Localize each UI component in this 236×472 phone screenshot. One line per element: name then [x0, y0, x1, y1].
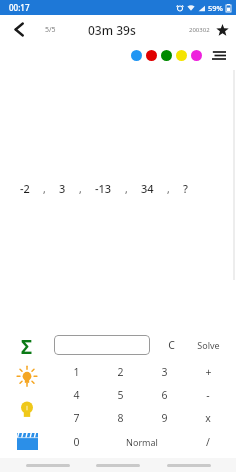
- button[interactable]: 0: [54, 430, 98, 454]
- staticText: 9: [161, 411, 168, 425]
- staticText: -2: [20, 181, 30, 196]
- staticText: 5: [117, 388, 124, 402]
- button[interactable]: Colour marker: [131, 50, 142, 61]
- button[interactable]: 9: [142, 406, 186, 430]
- staticText: 4: [73, 388, 80, 402]
- button[interactable]: Colour marker: [161, 50, 172, 61]
- staticText: Normal: [126, 436, 158, 448]
- staticText: 1: [73, 365, 80, 379]
- staticText: 03m 39s: [88, 22, 136, 38]
- button[interactable]: x: [186, 406, 230, 430]
- button[interactable]: 2: [98, 360, 142, 383]
- staticText: ,: [43, 182, 46, 196]
- staticText: ?: [183, 181, 188, 196]
- button[interactable]: +: [186, 360, 230, 383]
- button[interactable]: System navigation: [95, 458, 141, 472]
- staticText: 3: [161, 365, 168, 379]
- staticText: -13: [95, 181, 112, 196]
- staticText: 6: [161, 388, 168, 402]
- staticText: /: [206, 435, 210, 449]
- staticText: 0: [73, 435, 80, 449]
- button[interactable]: Video: [12, 426, 42, 456]
- button[interactable]: Solution hint: [12, 395, 42, 425]
- button[interactable]: Colour marker: [176, 50, 187, 61]
- button[interactable]: Favourite: [211, 19, 233, 41]
- staticText: ,: [79, 182, 82, 196]
- staticText: +: [205, 365, 212, 379]
- staticText: 59%: [208, 3, 223, 13]
- button[interactable]: 5: [98, 383, 142, 406]
- staticText: ,: [167, 182, 170, 196]
- staticText: 3: [59, 181, 66, 196]
- button[interactable]: -: [186, 383, 230, 406]
- button[interactable]: Menu: [209, 45, 229, 65]
- button[interactable]: 3: [142, 360, 186, 383]
- button[interactable]: Colour marker: [191, 50, 202, 61]
- button[interactable]: Sum: [12, 332, 42, 362]
- button[interactable]: 4: [54, 383, 98, 406]
- button[interactable]: Normal: [98, 430, 186, 454]
- staticText: -: [206, 388, 210, 402]
- button[interactable]: 1: [54, 360, 98, 383]
- button[interactable]: System navigation: [25, 458, 71, 472]
- button[interactable]: Solve: [186, 330, 230, 360]
- staticText: ,: [125, 182, 128, 196]
- button[interactable]: C: [156, 330, 186, 360]
- button[interactable]: Hint: [12, 363, 42, 393]
- button[interactable]: [54, 335, 150, 355]
- staticText: 00:17: [9, 2, 30, 13]
- button[interactable]: /: [186, 430, 230, 454]
- staticText: x: [205, 411, 211, 425]
- staticText: C: [168, 338, 175, 352]
- staticText: 2: [117, 365, 124, 379]
- staticText: Σ: [21, 334, 33, 360]
- button[interactable]: Back: [4, 15, 34, 44]
- staticText: 200302: [189, 26, 210, 34]
- button[interactable]: Colour marker: [146, 50, 157, 61]
- button[interactable]: 7: [54, 406, 98, 430]
- button[interactable]: 6: [142, 383, 186, 406]
- staticText: 8: [117, 411, 124, 425]
- staticText: 7: [73, 411, 80, 425]
- staticText: 34: [141, 181, 154, 196]
- button[interactable]: System navigation: [166, 458, 212, 472]
- staticText: 5/5: [45, 25, 56, 35]
- button[interactable]: 8: [98, 406, 142, 430]
- staticText: Solve: [197, 339, 220, 351]
